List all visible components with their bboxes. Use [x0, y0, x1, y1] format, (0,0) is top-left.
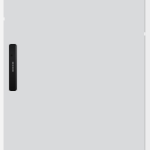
- button[interactable]: Product photo: [0, 0, 150, 150]
